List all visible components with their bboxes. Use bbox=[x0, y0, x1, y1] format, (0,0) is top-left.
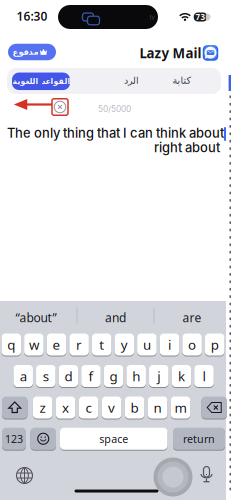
button[interactable]: u bbox=[137, 333, 157, 356]
staticText: 123 bbox=[5, 432, 23, 446]
staticText: m bbox=[175, 399, 187, 416]
button[interactable]: g bbox=[104, 364, 123, 387]
staticText: كتابة bbox=[172, 75, 191, 86]
button[interactable]: y bbox=[114, 333, 134, 356]
button[interactable]: Emoji bbox=[30, 427, 56, 450]
staticText: e bbox=[52, 336, 60, 353]
staticText: tv bbox=[149, 14, 154, 21]
button[interactable]: كتابة bbox=[156, 69, 206, 91]
button[interactable]: AssistiveTouch bbox=[153, 457, 192, 496]
staticText: o bbox=[188, 336, 196, 353]
staticText: f bbox=[88, 367, 93, 385]
button[interactable]: are bbox=[157, 303, 227, 331]
staticText: القواعد اللغوية bbox=[12, 77, 70, 86]
staticText: Lazy Mail bbox=[139, 44, 201, 62]
staticText: d bbox=[64, 367, 72, 385]
staticText: h bbox=[132, 367, 140, 385]
staticText: right about bbox=[154, 140, 220, 155]
staticText: c bbox=[86, 399, 92, 416]
staticText: الرد bbox=[123, 75, 138, 86]
staticText: i bbox=[168, 336, 171, 353]
button[interactable]: w bbox=[24, 333, 44, 356]
staticText: z bbox=[40, 399, 46, 416]
staticText: k bbox=[178, 367, 185, 385]
staticText: 16:30 bbox=[16, 8, 47, 24]
staticText: 50/5000 bbox=[98, 104, 131, 114]
staticText: p bbox=[211, 336, 219, 353]
button[interactable]: Next keyboard bbox=[16, 467, 33, 484]
button[interactable]: b bbox=[125, 396, 144, 419]
staticText: return bbox=[183, 432, 215, 446]
button[interactable]: space bbox=[60, 427, 167, 450]
button[interactable]: r bbox=[69, 333, 89, 356]
button[interactable]: j bbox=[149, 364, 169, 387]
button[interactable]: Shift bbox=[2, 396, 27, 419]
staticText: n bbox=[154, 399, 162, 416]
staticText: are bbox=[182, 309, 201, 325]
staticText: r bbox=[76, 336, 82, 353]
button[interactable]: e bbox=[47, 333, 66, 356]
staticText: s bbox=[43, 367, 49, 385]
button[interactable]: h bbox=[126, 364, 146, 387]
button[interactable]: t bbox=[92, 333, 111, 356]
button[interactable]: x bbox=[56, 396, 75, 419]
staticText: space bbox=[99, 432, 128, 446]
button[interactable]: f bbox=[81, 364, 101, 387]
button[interactable]: مدفوع bbox=[8, 44, 56, 60]
button[interactable]: الرد bbox=[106, 69, 156, 91]
staticText: t bbox=[99, 336, 104, 353]
button[interactable]: “about” bbox=[1, 303, 71, 331]
button[interactable]: a bbox=[13, 364, 33, 387]
button[interactable]: p bbox=[205, 333, 224, 356]
button[interactable]: d bbox=[59, 364, 78, 387]
staticText: and bbox=[105, 309, 126, 325]
button[interactable]: o bbox=[182, 333, 202, 356]
staticText: “about” bbox=[15, 309, 56, 325]
button[interactable]: n bbox=[148, 396, 167, 419]
button[interactable]: m bbox=[171, 396, 190, 419]
button[interactable]: s bbox=[36, 364, 55, 387]
staticText: j bbox=[157, 367, 160, 385]
staticText: w bbox=[29, 336, 39, 353]
button[interactable]: return bbox=[173, 427, 225, 450]
staticText: x bbox=[62, 399, 69, 416]
staticText: y bbox=[121, 336, 128, 353]
staticText: مدفوع bbox=[12, 47, 38, 57]
button[interactable]: z bbox=[33, 396, 52, 419]
button[interactable]: v bbox=[102, 396, 121, 419]
button[interactable]: q bbox=[2, 333, 21, 356]
button[interactable]: Dictation bbox=[200, 465, 213, 483]
staticText: u bbox=[143, 336, 151, 353]
button[interactable]: l bbox=[194, 364, 214, 387]
button[interactable]: 123 bbox=[2, 427, 26, 450]
staticText: l bbox=[202, 367, 205, 385]
staticText: The only thing that I can think about bbox=[7, 125, 224, 141]
button[interactable]: i bbox=[160, 333, 179, 356]
staticText: g bbox=[110, 367, 118, 385]
staticText: b bbox=[131, 399, 139, 416]
button[interactable]: Delete bbox=[201, 396, 227, 419]
staticText: v bbox=[108, 399, 115, 416]
staticText: a bbox=[20, 367, 27, 385]
button[interactable]: c bbox=[79, 396, 98, 419]
button[interactable]: and bbox=[80, 303, 150, 331]
staticText: q bbox=[7, 336, 15, 353]
button[interactable]: k bbox=[172, 364, 191, 387]
button[interactable]: القواعد اللغوية bbox=[12, 72, 70, 90]
button[interactable]: Clear text bbox=[53, 100, 66, 113]
staticText: 73 bbox=[195, 12, 205, 22]
